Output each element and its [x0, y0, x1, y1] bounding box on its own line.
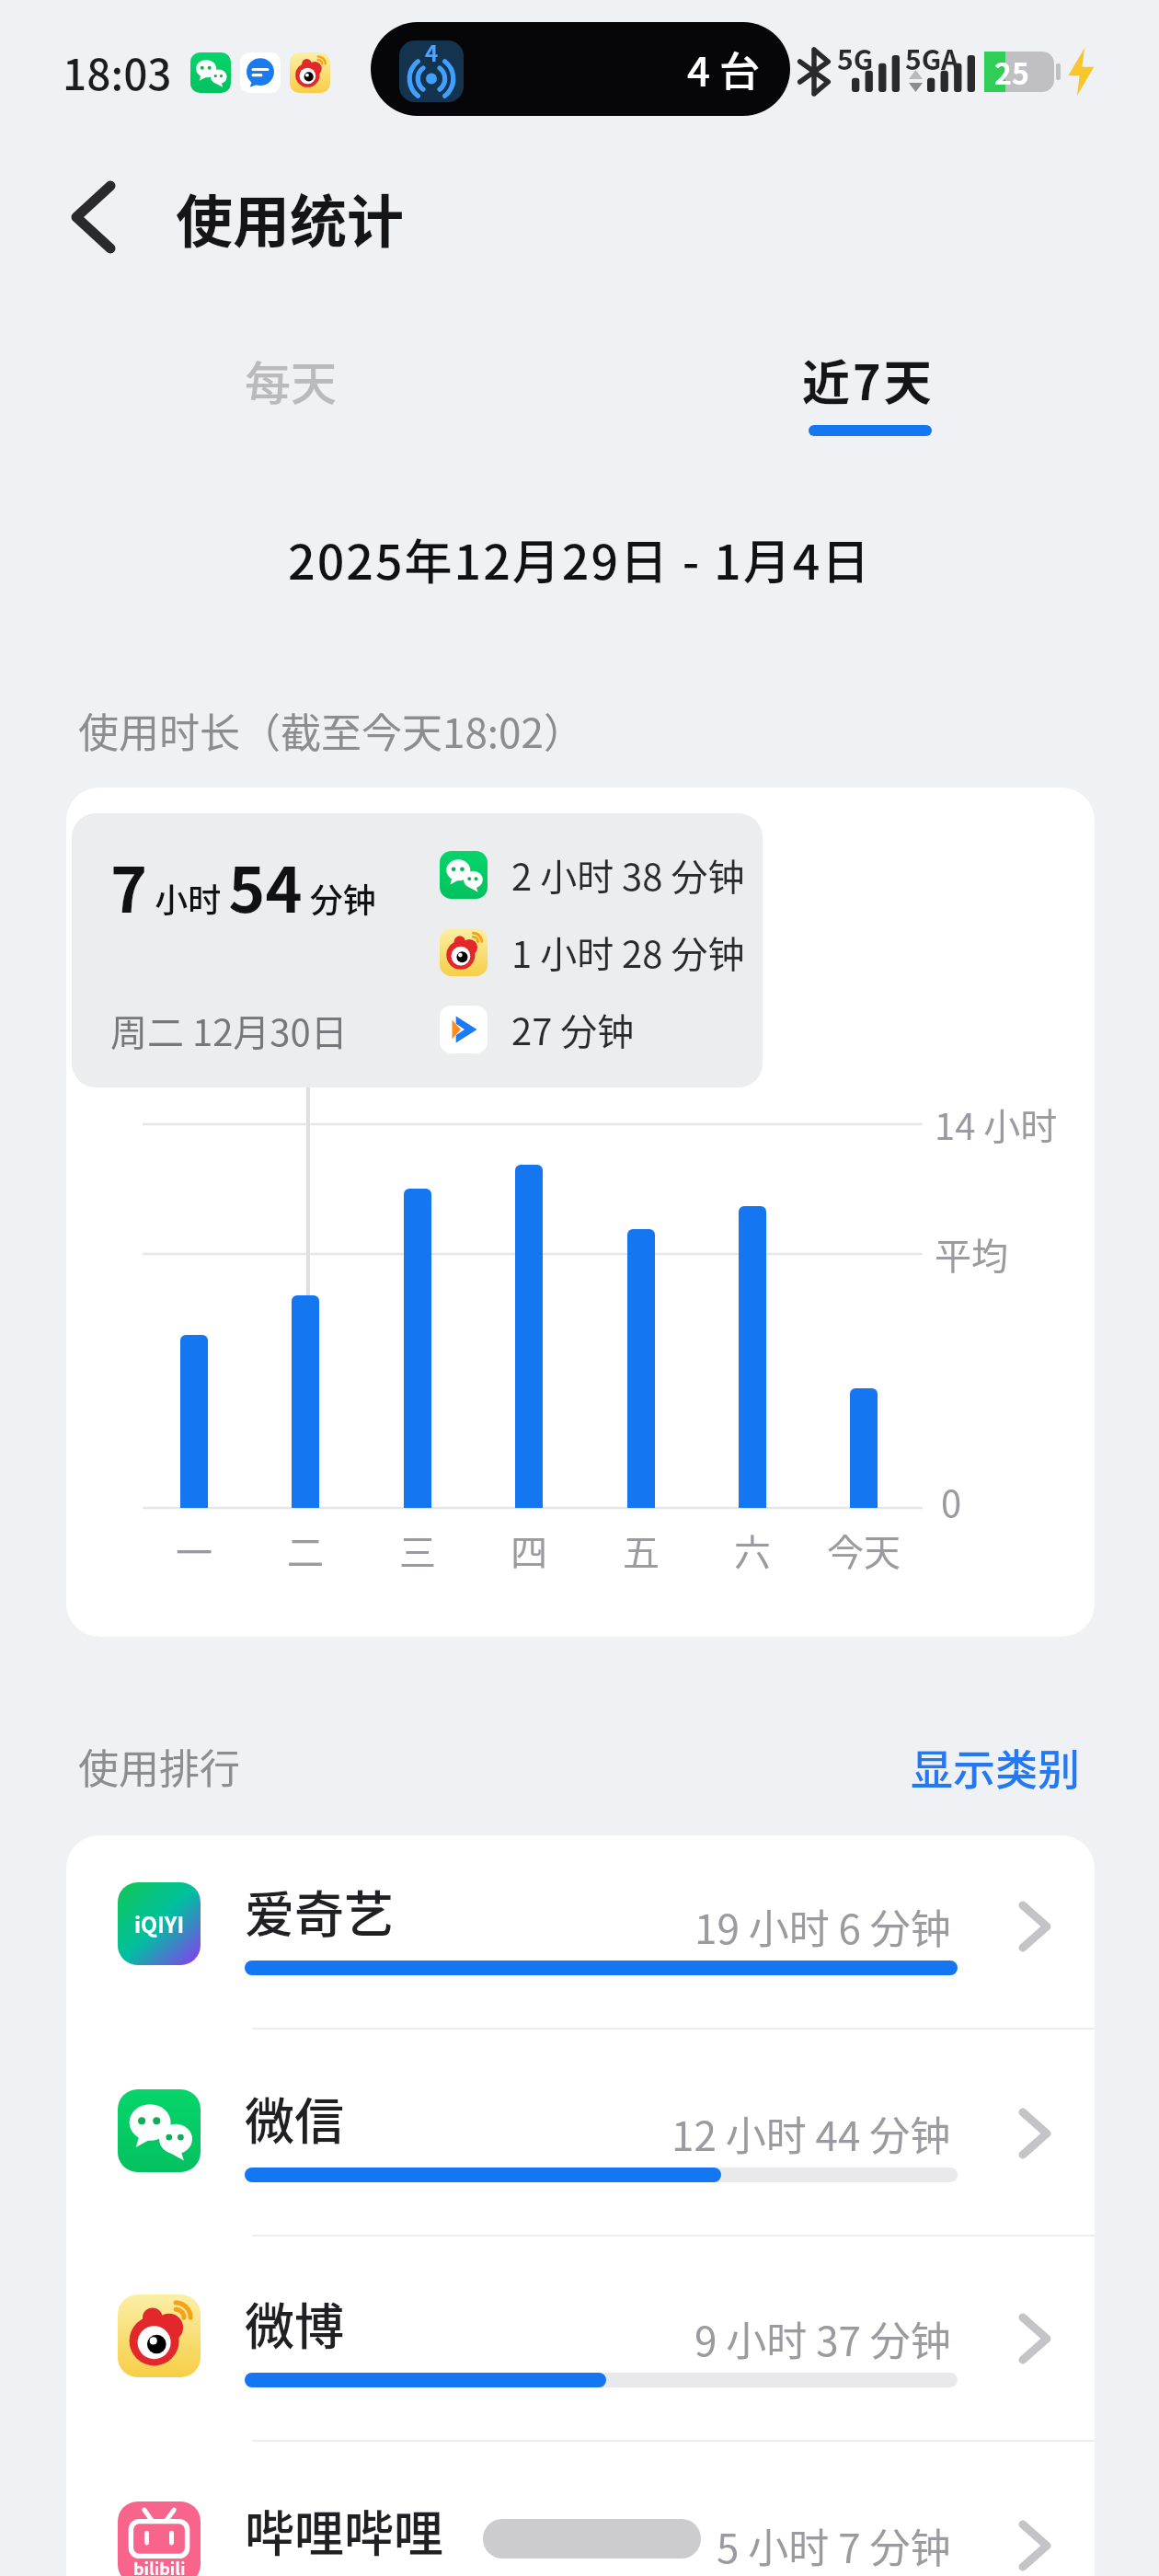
- staticText: 27 分钟: [511, 1003, 635, 1056]
- staticText: 显示类别: [911, 1736, 1080, 1798]
- staticText: 9 小时 37 分钟: [694, 2309, 951, 2368]
- staticText: 4: [425, 36, 439, 68]
- staticText: 微信: [245, 2082, 344, 2154]
- staticText: 5G: [837, 38, 874, 77]
- staticText: 25: [994, 51, 1029, 93]
- staticText: 平均: [935, 1227, 1008, 1281]
- staticText: 2025年12月29日 - 1月4日: [288, 524, 872, 593]
- staticText: 18:03: [63, 41, 172, 103]
- button[interactable]: [66, 2233, 1095, 2440]
- staticText: 7 小时 54 分钟: [110, 840, 376, 930]
- button[interactable]: [66, 1821, 1095, 2028]
- staticText: 使用排行: [78, 1737, 240, 1796]
- button[interactable]: [66, 2028, 1095, 2235]
- button[interactable]: [221, 340, 368, 423]
- staticText: 2 小时 38 分钟: [511, 848, 745, 902]
- button[interactable]: [901, 1720, 1095, 1812]
- staticText: 使用时长（截至今天18:02）: [78, 701, 584, 760]
- staticText: 周二 12月30日: [110, 1004, 348, 1057]
- staticText: 12 小时 44 分钟: [671, 2104, 951, 2163]
- button[interactable]: [53, 175, 138, 259]
- staticText: 使用统计: [176, 177, 405, 259]
- staticText: iQIYI: [134, 1908, 185, 1939]
- staticText: 近7天: [802, 345, 935, 414]
- button[interactable]: [66, 2440, 1095, 2576]
- staticText: 今天: [827, 1524, 901, 1577]
- staticText: 14 小时: [935, 1098, 1058, 1151]
- staticText: 六: [734, 1524, 771, 1577]
- staticText: 三: [399, 1524, 436, 1577]
- staticText: 4 台: [687, 40, 760, 98]
- staticText: 微博: [245, 2287, 344, 2359]
- staticText: 5 小时 7 分钟: [717, 2516, 951, 2575]
- staticText: 19 小时 6 分钟: [694, 1897, 951, 1956]
- button[interactable]: [791, 340, 947, 442]
- staticText: 每天: [245, 347, 337, 413]
- staticText: bilibili: [133, 2556, 186, 2576]
- staticText: 1 小时 28 分钟: [511, 926, 745, 979]
- staticText: 一: [176, 1524, 212, 1577]
- staticText: 二: [287, 1524, 324, 1577]
- staticText: 四: [511, 1524, 547, 1577]
- staticText: 五: [623, 1524, 660, 1577]
- staticText: 爱奇艺: [245, 1875, 394, 1947]
- staticText: 哔哩哔哩: [245, 2494, 443, 2566]
- staticText: 5GA: [905, 38, 959, 77]
- staticText: 0: [941, 1475, 962, 1528]
